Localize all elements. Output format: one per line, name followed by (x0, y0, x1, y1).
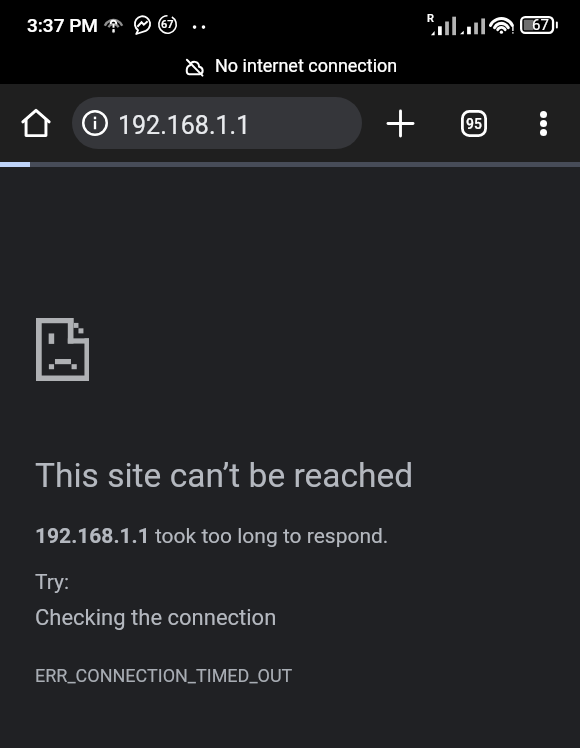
staticText: Checking the connection (35, 605, 277, 631)
staticText: R (427, 12, 434, 25)
staticText: ERR_CONNECTION_TIMED_OUT (35, 665, 293, 686)
staticText: 3:37 PM (27, 14, 98, 36)
staticText: 95 (466, 116, 482, 132)
staticText: This site can’t be reached (35, 456, 414, 495)
staticText: 192.168.1.1 took too long to respond. (35, 524, 389, 549)
staticText: 67 (532, 16, 549, 34)
staticText: Try: (35, 570, 70, 595)
staticText: No internet connection (215, 55, 398, 76)
button[interactable]: Home (8, 95, 64, 151)
staticText: 192.168.1.1 (118, 111, 251, 140)
button[interactable]: More options (517, 97, 569, 149)
button[interactable]: 192.168.1.1 (72, 97, 362, 149)
button[interactable]: Switch tabs, 95 open (448, 97, 500, 149)
button[interactable]: New tab (374, 97, 426, 149)
staticText: 67 (161, 18, 174, 31)
